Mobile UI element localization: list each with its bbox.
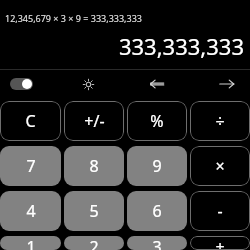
button[interactable]: C [0, 101, 61, 141]
staticText: + [215, 236, 225, 250]
staticText: 1 [26, 236, 36, 250]
button[interactable]: 5 [64, 191, 124, 231]
button[interactable]: 6 [127, 191, 187, 231]
staticText: 8 [89, 155, 99, 177]
button[interactable]: ÷ [190, 101, 250, 141]
staticText: 333,333,333 [118, 31, 244, 61]
staticText: 2 [89, 236, 99, 250]
staticText: +/- [84, 110, 105, 132]
button[interactable]: × [190, 146, 250, 186]
button[interactable]: Previous [143, 70, 171, 97]
staticText: 7 [26, 155, 36, 177]
staticText: 12,345,679 × 3 × 9 = 333,333,333 [5, 12, 142, 24]
button[interactable]: + [190, 236, 250, 250]
button[interactable]: 3 [127, 236, 187, 250]
staticText: 9 [152, 155, 162, 177]
staticText: ÷ [215, 110, 225, 132]
button[interactable]: % [127, 101, 187, 141]
staticText: C [25, 110, 36, 132]
button[interactable]: +/- [64, 101, 124, 141]
button[interactable]: 1 [0, 236, 61, 250]
staticText: 5 [89, 200, 99, 222]
button[interactable]: Brightness [76, 72, 100, 96]
staticText: - [217, 200, 223, 222]
staticText: % [150, 110, 164, 132]
button[interactable]: Next [214, 70, 240, 97]
button[interactable]: 8 [64, 146, 124, 186]
staticText: 4 [26, 200, 36, 222]
button[interactable]: 4 [0, 191, 61, 231]
button[interactable]: 9 [127, 146, 187, 186]
button[interactable]: 7 [0, 146, 61, 186]
button[interactable]: 2 [64, 236, 124, 250]
button[interactable]: Toggle [10, 78, 33, 90]
staticText: 6 [152, 200, 162, 222]
button[interactable]: - [190, 191, 250, 231]
staticText: × [215, 155, 225, 177]
staticText: 3 [152, 236, 162, 250]
